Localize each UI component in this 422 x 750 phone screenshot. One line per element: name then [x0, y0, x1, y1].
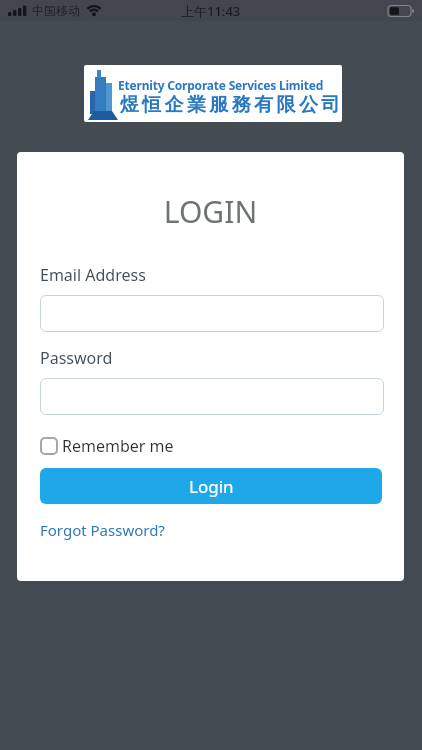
staticText: Login	[189, 475, 234, 498]
button[interactable]: Login	[40, 468, 382, 504]
staticText: Password	[40, 347, 113, 369]
staticText: Remember me	[62, 435, 174, 457]
button[interactable]: Remember me	[40, 435, 174, 457]
button[interactable]	[40, 295, 384, 332]
staticText: 上午11:43	[181, 2, 241, 20]
button[interactable]: Forgot Password?	[40, 520, 165, 540]
button[interactable]	[40, 378, 384, 415]
staticText: Eternity Corporate Services Limited	[118, 77, 324, 93]
staticText: 煜恒企業服務有限公司	[118, 93, 342, 117]
staticText: 中国移动	[32, 3, 80, 18]
staticText: LOGIN	[17, 191, 404, 232]
staticText: Email Address	[40, 264, 146, 286]
